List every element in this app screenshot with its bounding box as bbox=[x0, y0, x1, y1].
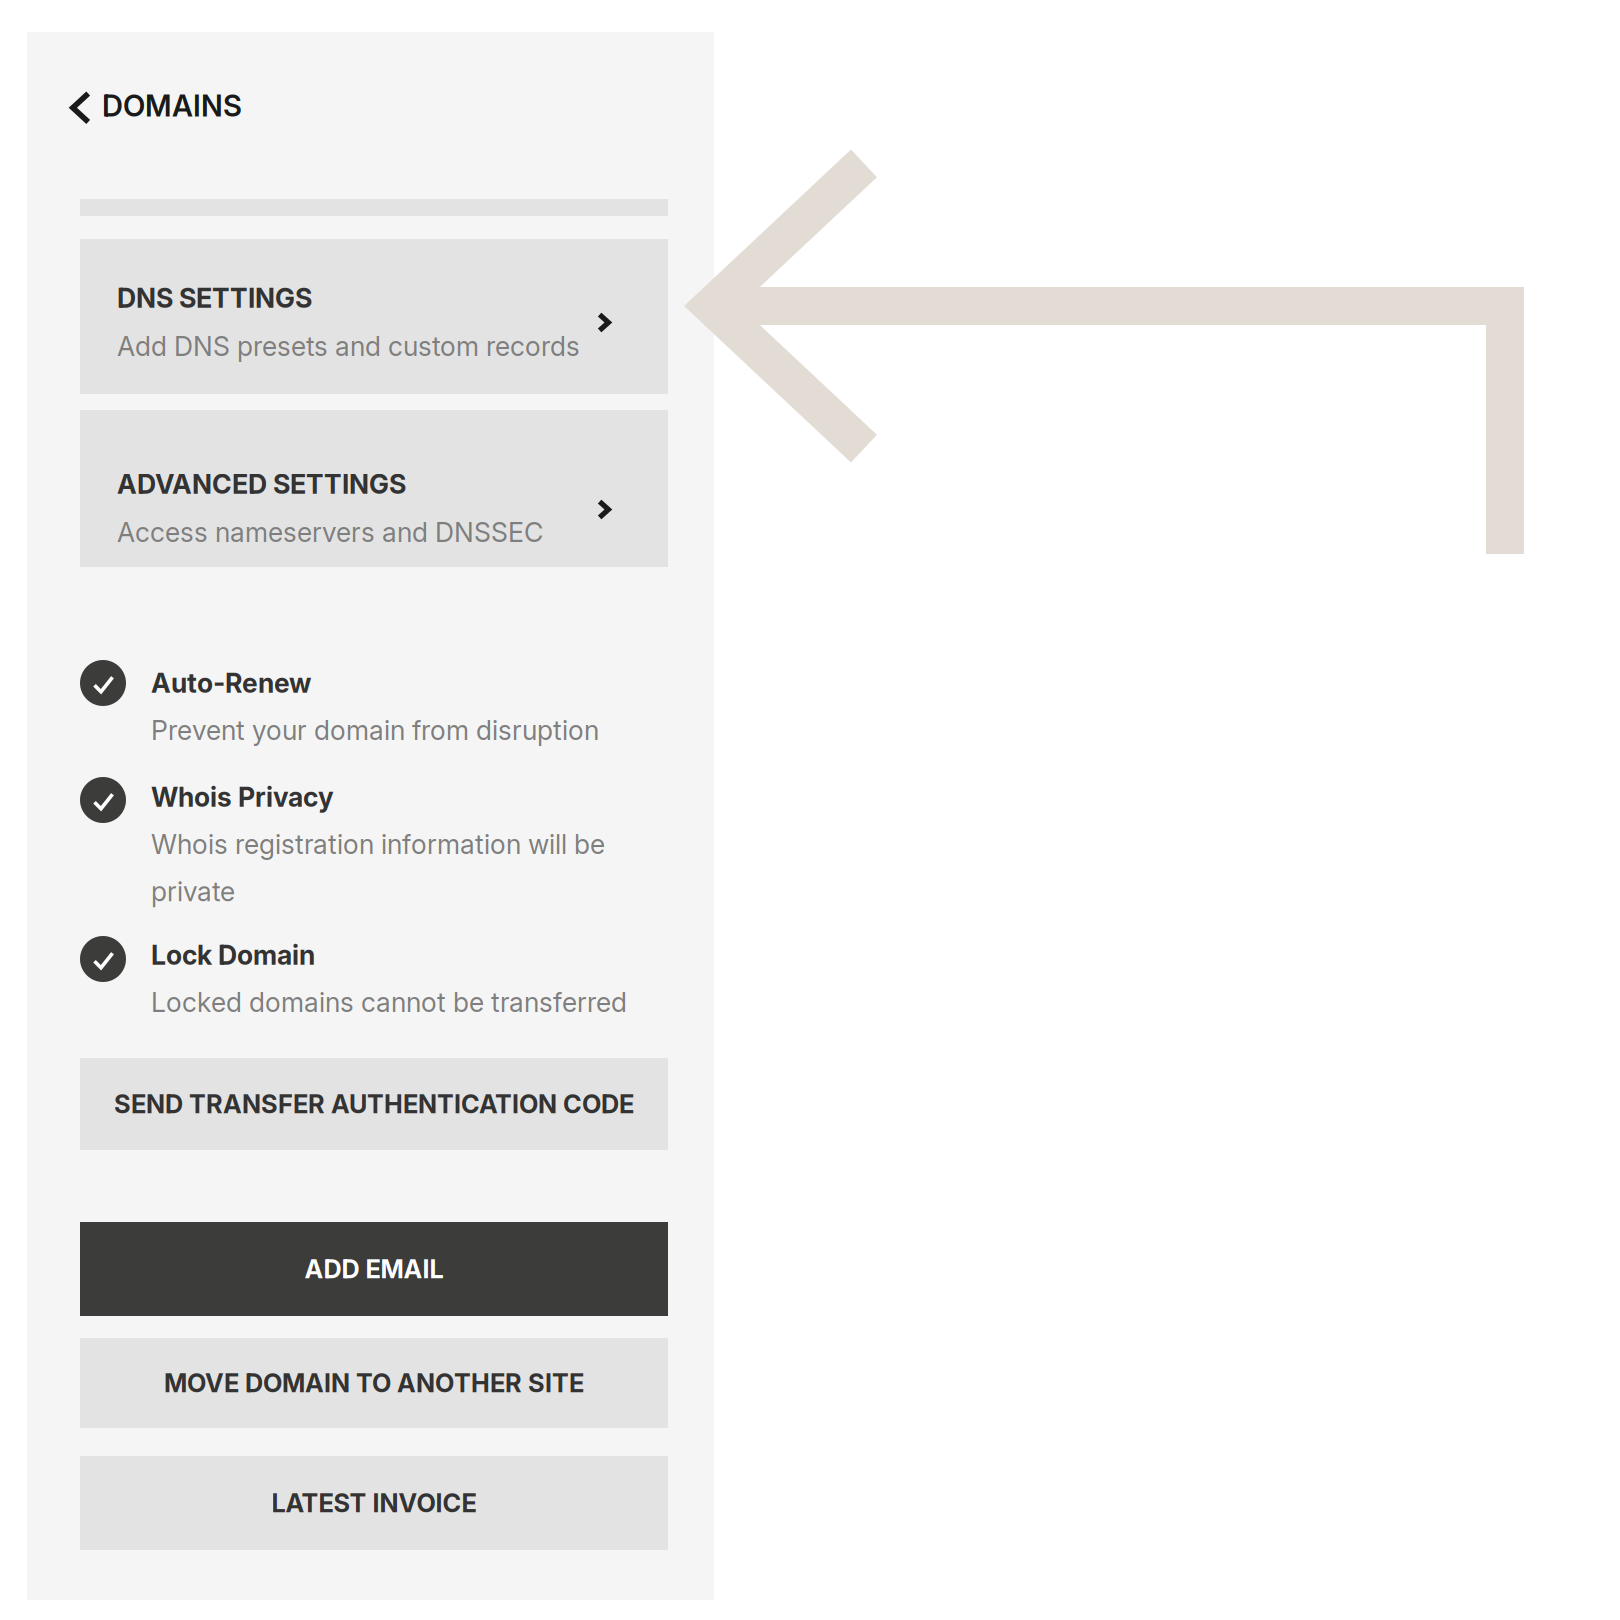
staticText: DNS SETTINGS bbox=[117, 282, 312, 314]
staticText: Access nameservers and DNSSEC bbox=[117, 516, 543, 549]
staticText: DOMAINS bbox=[102, 88, 242, 123]
button[interactable]: DOMAINS bbox=[27, 74, 714, 141]
button[interactable]: ADVANCED SETTINGS bbox=[80, 410, 668, 567]
staticText: Add DNS presets and custom records bbox=[117, 330, 580, 363]
staticText: Prevent your domain from disruption bbox=[151, 714, 599, 747]
staticText: Whois Privacy bbox=[151, 781, 334, 813]
staticText: Auto-Renew bbox=[151, 667, 311, 699]
staticText: ADVANCED SETTINGS bbox=[117, 468, 406, 500]
staticText: LATEST INVOICE bbox=[271, 1488, 476, 1518]
staticText: ADD EMAIL bbox=[304, 1254, 443, 1284]
staticText: Lock Domain bbox=[151, 939, 315, 971]
button[interactable]: ADD EMAIL bbox=[80, 1222, 668, 1316]
staticText: Whois registration information will be bbox=[151, 828, 605, 861]
staticText: MOVE DOMAIN TO ANOTHER SITE bbox=[164, 1368, 584, 1398]
staticText: SEND TRANSFER AUTHENTICATION CODE bbox=[114, 1089, 634, 1119]
staticText: Locked domains cannot be transferred bbox=[151, 986, 627, 1019]
staticText: private bbox=[151, 875, 235, 908]
button[interactable]: SEND TRANSFER AUTHENTICATION CODE bbox=[80, 1058, 668, 1150]
button[interactable]: LATEST INVOICE bbox=[80, 1456, 668, 1550]
button[interactable]: MOVE DOMAIN TO ANOTHER SITE bbox=[80, 1338, 668, 1428]
button[interactable]: DNS SETTINGS bbox=[80, 239, 668, 394]
